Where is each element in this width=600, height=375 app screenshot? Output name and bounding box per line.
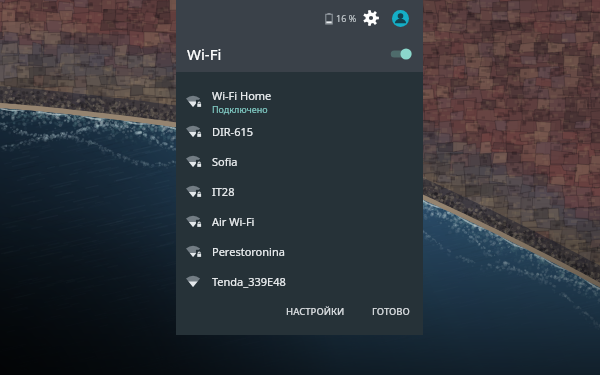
- staticText: Wi-Fi: [187, 44, 222, 64]
- button[interactable]: Account: [389, 7, 412, 30]
- staticText: Perestoronina: [212, 244, 285, 259]
- button[interactable]: НАСТРОЙКИ: [278, 300, 353, 323]
- staticText: IT28: [212, 184, 235, 199]
- button[interactable]: Sofia: [176, 146, 423, 176]
- staticText: Sofia: [212, 154, 238, 169]
- button[interactable]: Tenda_339E48: [176, 266, 423, 296]
- staticText: DIR-615: [212, 124, 254, 139]
- staticText: 16 %: [336, 12, 357, 24]
- button[interactable]: Settings: [360, 7, 382, 29]
- staticText: ГОТОВО: [372, 305, 410, 318]
- button[interactable]: Wi-Fi toggle: [385, 44, 411, 64]
- staticText: Wi-Fi Home: [212, 88, 272, 103]
- button[interactable]: DIR-615: [176, 116, 423, 146]
- staticText: НАСТРОЙКИ: [286, 305, 345, 318]
- button[interactable]: ГОТОВО: [364, 300, 418, 323]
- button[interactable]: Air Wi-Fi: [176, 206, 423, 236]
- button[interactable]: Wi-Fi Home: [176, 80, 423, 116]
- staticText: Подключено: [212, 103, 268, 115]
- button[interactable]: IT28: [176, 176, 423, 206]
- staticText: Tenda_339E48: [212, 274, 286, 289]
- button[interactable]: Perestoronina: [176, 236, 423, 266]
- staticText: Air Wi-Fi: [212, 214, 255, 229]
